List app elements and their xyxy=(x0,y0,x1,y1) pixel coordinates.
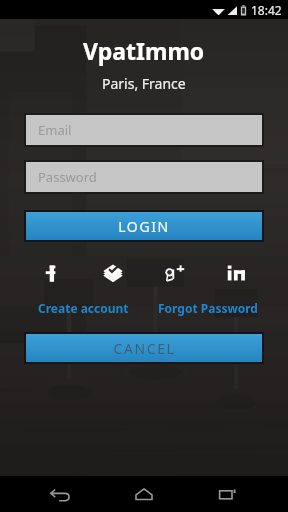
button[interactable]: Password xyxy=(26,162,262,192)
button[interactable]: Home xyxy=(120,476,168,512)
staticText: Forgot Password xyxy=(158,300,258,316)
button[interactable]: Email xyxy=(26,115,262,145)
button[interactable]: Google Plus xyxy=(158,256,192,290)
button[interactable]: Forgot Password xyxy=(152,298,264,318)
button[interactable]: Facebook xyxy=(34,256,68,290)
button[interactable]: CANCEL xyxy=(26,334,262,362)
button[interactable]: Create account xyxy=(24,298,143,318)
button[interactable]: LOGIN xyxy=(26,212,262,240)
button[interactable]: LinkedIn xyxy=(220,256,254,290)
button[interactable]: Recent apps xyxy=(204,476,252,512)
staticText: Create account xyxy=(38,300,129,316)
staticText: LOGIN xyxy=(118,217,170,236)
button[interactable]: Back xyxy=(36,476,84,512)
staticText: Paris, France xyxy=(102,74,186,93)
staticText: Email xyxy=(38,121,72,139)
button[interactable]: Foursquare xyxy=(96,256,130,290)
staticText: Password xyxy=(38,168,97,186)
staticText: VpatImmo xyxy=(83,35,205,66)
staticText: 18:42 xyxy=(251,2,282,18)
staticText: CANCEL xyxy=(113,339,176,358)
